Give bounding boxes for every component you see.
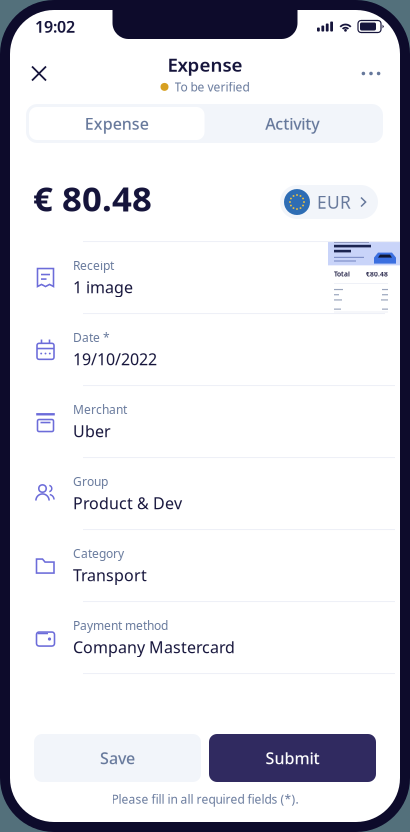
staticText: € 80.48 <box>33 175 152 221</box>
staticText: Product & Dev <box>73 492 182 514</box>
staticText: Date * <box>73 329 110 345</box>
button[interactable]: Merchant <box>35 386 400 458</box>
staticText: EUR <box>317 190 351 213</box>
button[interactable]: Group <box>35 458 400 530</box>
button[interactable]: Category <box>35 530 400 602</box>
button[interactable]: More options <box>353 55 389 91</box>
button[interactable]: Expense <box>29 107 204 140</box>
staticText: Payment method <box>73 617 168 633</box>
button[interactable]: Close <box>21 55 57 91</box>
button[interactable]: Save <box>34 734 201 782</box>
button[interactable]: EUR <box>280 181 378 215</box>
staticText: Uber <box>73 420 111 442</box>
staticText: Total <box>334 270 350 278</box>
staticText: 19:02 <box>35 16 75 37</box>
staticText: Receipt <box>73 257 114 273</box>
staticText: Merchant <box>73 401 127 417</box>
staticText: Expense <box>167 52 242 77</box>
staticText: Activity <box>265 113 319 134</box>
button[interactable]: Submit <box>209 734 376 782</box>
staticText: Company Mastercard <box>73 636 235 658</box>
staticText: Expense <box>85 113 149 134</box>
staticText: Group <box>73 473 108 489</box>
button[interactable]: Receipt <box>35 242 400 314</box>
button[interactable]: Activity <box>204 107 380 140</box>
staticText: €80.48 <box>366 270 388 278</box>
staticText: Submit <box>265 747 319 769</box>
button[interactable]: Payment method <box>35 602 400 674</box>
staticText: Transport <box>73 564 147 586</box>
staticText: Category <box>73 545 124 561</box>
staticText: 1 image <box>73 276 133 298</box>
button[interactable]: Date * <box>35 314 400 386</box>
staticText: 19/10/2022 <box>73 348 157 370</box>
staticText: Please fill in all required fields (*). <box>111 791 298 807</box>
staticText: To be verified <box>174 79 249 95</box>
staticText: Save <box>100 747 135 769</box>
